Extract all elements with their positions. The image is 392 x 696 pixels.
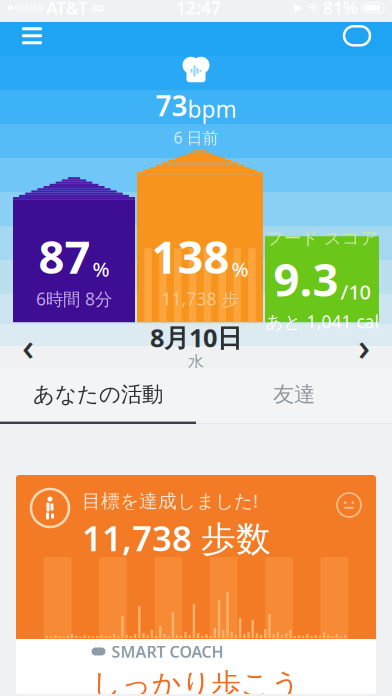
- button[interactable]: Menu: [12, 17, 52, 54]
- staticText: しっかり歩こう: [91, 666, 300, 696]
- staticText: 81%: [323, 0, 358, 19]
- button[interactable]: あなたの活動: [0, 367, 196, 422]
- staticText: 9.3: [273, 249, 338, 309]
- staticText: SMART COACH: [111, 641, 223, 662]
- staticText: 友達: [273, 381, 315, 408]
- staticText: ➤: [291, 0, 303, 16]
- staticText: 水: [188, 352, 204, 372]
- staticText: 目標を達成しました!: [82, 488, 258, 513]
- staticText: 8月10日: [150, 321, 242, 354]
- staticText: ‹: [22, 321, 34, 371]
- staticText: あと 1,041 cal: [265, 310, 378, 333]
- staticText: 87: [38, 226, 90, 286]
- staticText: 12:47: [176, 0, 221, 19]
- staticText: bpm: [187, 94, 236, 124]
- staticText: 73: [155, 87, 187, 124]
- button[interactable]: フード スコア: [265, 236, 379, 322]
- staticText: ›: [358, 321, 370, 371]
- button[interactable]: 138: [137, 150, 263, 322]
- button[interactable]: 73: [135, 54, 256, 150]
- button[interactable]: 87: [13, 177, 135, 322]
- staticText: ≈: [91, 0, 106, 18]
- staticText: 6 日前: [173, 127, 218, 148]
- staticText: 11,738 歩数: [82, 515, 271, 561]
- button[interactable]: Previous day: [0, 317, 56, 375]
- staticText: 11,738 歩: [161, 287, 238, 310]
- staticText: /10: [340, 278, 370, 305]
- staticText: フード スコア: [266, 227, 378, 249]
- staticText: 6時間 8分: [36, 287, 112, 310]
- staticText: ✳: [307, 0, 319, 16]
- staticText: AT&T: [46, 0, 88, 19]
- button[interactable]: 目標を達成しました!: [16, 475, 376, 694]
- button[interactable]: Device: [334, 16, 380, 55]
- button[interactable]: Next day: [336, 317, 392, 375]
- staticText: %: [231, 256, 248, 282]
- staticText: %: [92, 256, 109, 282]
- staticText: あなたの活動: [33, 381, 163, 408]
- button[interactable]: 友達: [196, 367, 392, 422]
- staticText: 138: [151, 226, 229, 286]
